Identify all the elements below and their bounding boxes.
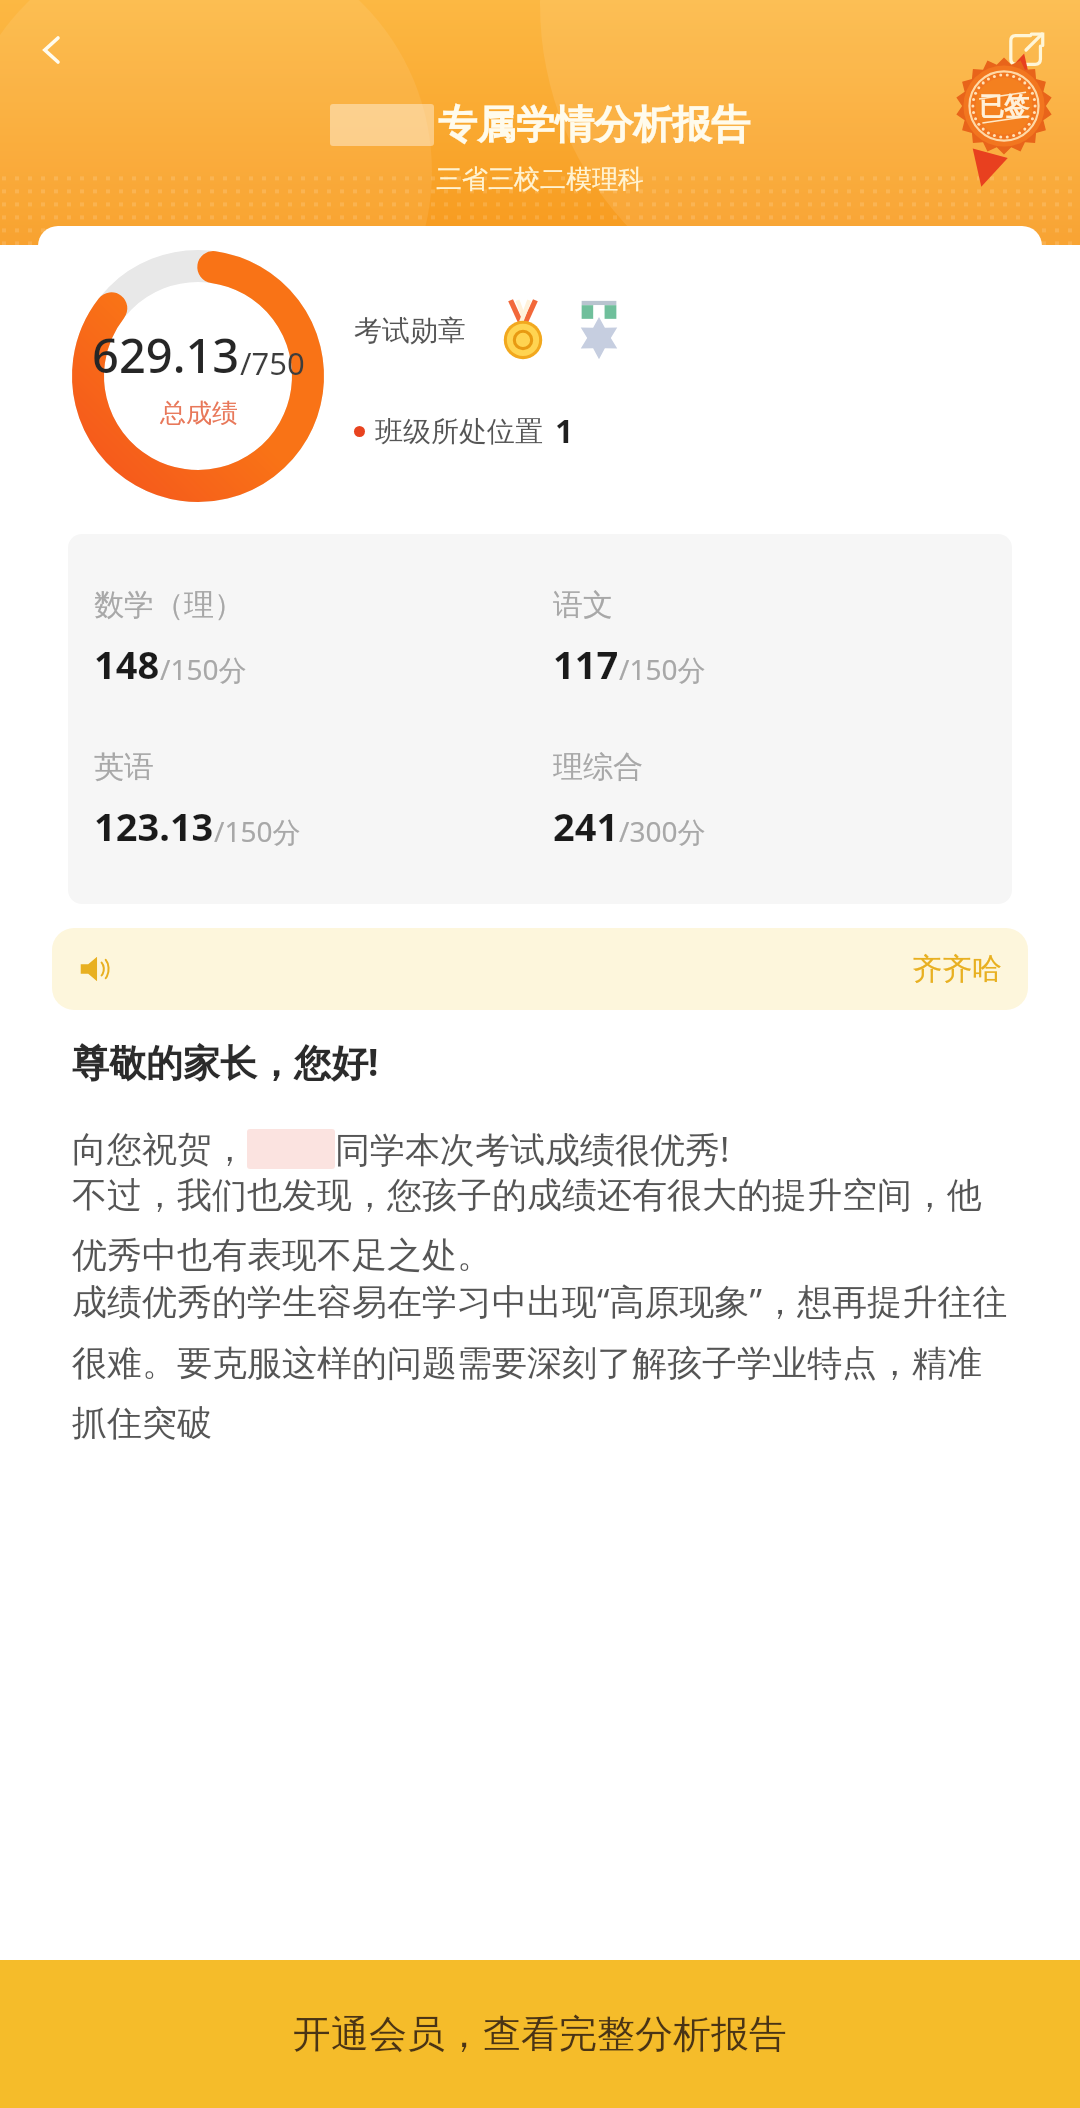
staticText: 148 [94, 638, 160, 690]
staticText: /150分 [214, 812, 301, 850]
staticText: 不过，我们也发现，您孩子的成绩还有很大的提升空间，他优秀中也有表现不足之处。 [72, 1173, 1008, 1277]
staticText: 已签 [979, 91, 1029, 122]
button[interactable]: Share [994, 18, 1058, 82]
staticText: 三省三校二模理科 [0, 163, 1080, 196]
staticText: 专属学情分析报告 [438, 100, 750, 149]
staticText: 语文 [553, 586, 613, 624]
staticText: 理综合 [553, 748, 643, 786]
staticText: 考试勋章 [354, 313, 466, 348]
button[interactable]: 数学（理） [68, 534, 1012, 904]
button[interactable]: 开通会员，查看完整分析报告 [0, 1960, 1080, 2108]
staticText: 1 [555, 409, 574, 453]
staticText: 班级所处位置 [375, 414, 543, 449]
staticText: 同学本次考试成绩很优秀! [335, 1125, 730, 1173]
staticText: 241 [553, 800, 619, 852]
staticText: 齐齐哈 [912, 950, 1002, 988]
staticText: 117 [553, 638, 619, 690]
button[interactable]: Back [20, 18, 84, 82]
staticText: /750 [240, 342, 305, 384]
staticText: 开通会员，查看完整分析报告 [293, 2010, 787, 2058]
staticText: 成绩优秀的学生容易在学习中出现“高原现象”，想再提升往往很难。要克服这样的问题需… [72, 1277, 1008, 1445]
staticText: /150分 [619, 650, 706, 688]
staticText: 123.13 [94, 800, 214, 852]
staticText: 数学（理） [94, 586, 244, 624]
button[interactable]: 齐齐哈 [52, 928, 1028, 1010]
staticText: /300分 [619, 812, 706, 850]
staticText: 英语 [94, 748, 154, 786]
staticText: 向您祝贺， [72, 1127, 247, 1171]
staticText: /150分 [160, 650, 247, 688]
button[interactable]: 629.13 [38, 226, 1042, 526]
staticText: 尊敬的家长，您好! [72, 1036, 379, 1087]
staticText: 总成绩 [160, 397, 238, 430]
staticText: 629.13 [92, 323, 240, 387]
